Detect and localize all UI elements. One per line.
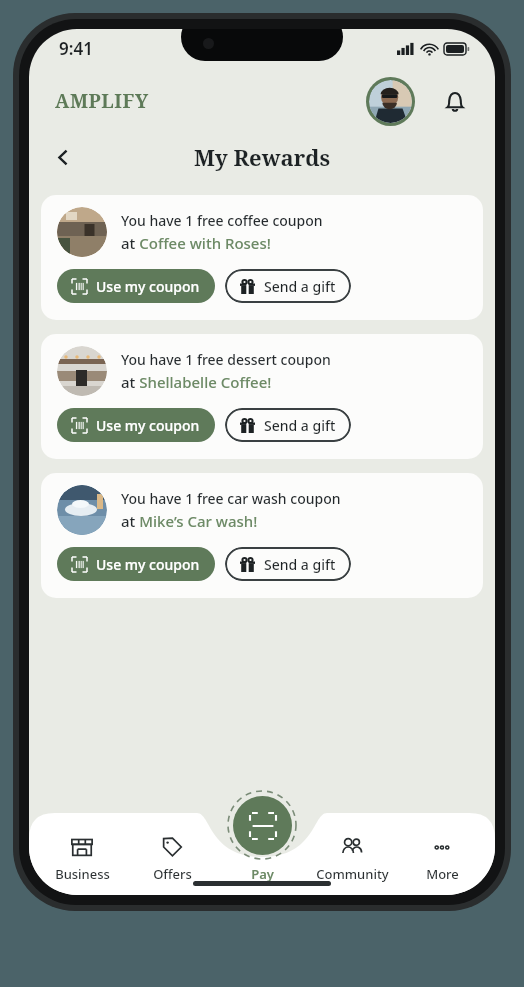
button[interactable]: Notifications bbox=[437, 84, 473, 120]
staticText: Use my coupon bbox=[96, 416, 200, 435]
staticText: Offers bbox=[153, 865, 192, 883]
staticText: More bbox=[426, 865, 459, 883]
button[interactable]: Use my coupon bbox=[57, 547, 215, 581]
staticText: Use my coupon bbox=[96, 277, 200, 296]
button[interactable]: Offers bbox=[129, 830, 215, 887]
staticText: You have 1 free car wash coupon bbox=[121, 489, 341, 508]
staticText: My Rewards bbox=[194, 142, 331, 172]
staticText: Use my coupon bbox=[96, 555, 200, 574]
staticText: 9:41 bbox=[59, 37, 93, 60]
button[interactable]: Send a gift bbox=[225, 408, 351, 442]
button[interactable]: You have 1 free dessert coupon bbox=[41, 334, 483, 459]
staticText: You have 1 free dessert coupon bbox=[121, 350, 331, 369]
staticText: at Coffee with Roses! bbox=[121, 233, 271, 253]
button[interactable]: More bbox=[399, 830, 485, 887]
button[interactable]: Use my coupon bbox=[57, 408, 215, 442]
staticText: Send a gift bbox=[264, 277, 336, 296]
staticText: at Shellabelle Coffee! bbox=[121, 372, 272, 392]
button[interactable]: Business bbox=[39, 830, 125, 887]
button[interactable]: Community bbox=[309, 830, 395, 887]
button[interactable]: Scan to pay bbox=[226, 789, 298, 861]
button[interactable]: Use my coupon bbox=[57, 269, 215, 303]
staticText: Pay bbox=[251, 865, 274, 883]
staticText: Send a gift bbox=[264, 555, 336, 574]
staticText: You have 1 free coffee coupon bbox=[121, 211, 323, 230]
button[interactable]: Pay bbox=[219, 830, 305, 887]
staticText: Business bbox=[55, 865, 110, 883]
button[interactable]: Send a gift bbox=[225, 269, 351, 303]
button[interactable]: You have 1 free coffee coupon bbox=[41, 195, 483, 320]
staticText: AMPLIFY bbox=[55, 88, 149, 114]
button[interactable]: Profile bbox=[369, 80, 412, 123]
button[interactable]: Send a gift bbox=[225, 547, 351, 581]
staticText: Community bbox=[316, 865, 389, 883]
staticText: at Mike’s Car wash! bbox=[121, 511, 258, 531]
button[interactable]: You have 1 free car wash coupon bbox=[41, 473, 483, 598]
button[interactable]: Back bbox=[43, 137, 83, 177]
staticText: Send a gift bbox=[264, 416, 336, 435]
